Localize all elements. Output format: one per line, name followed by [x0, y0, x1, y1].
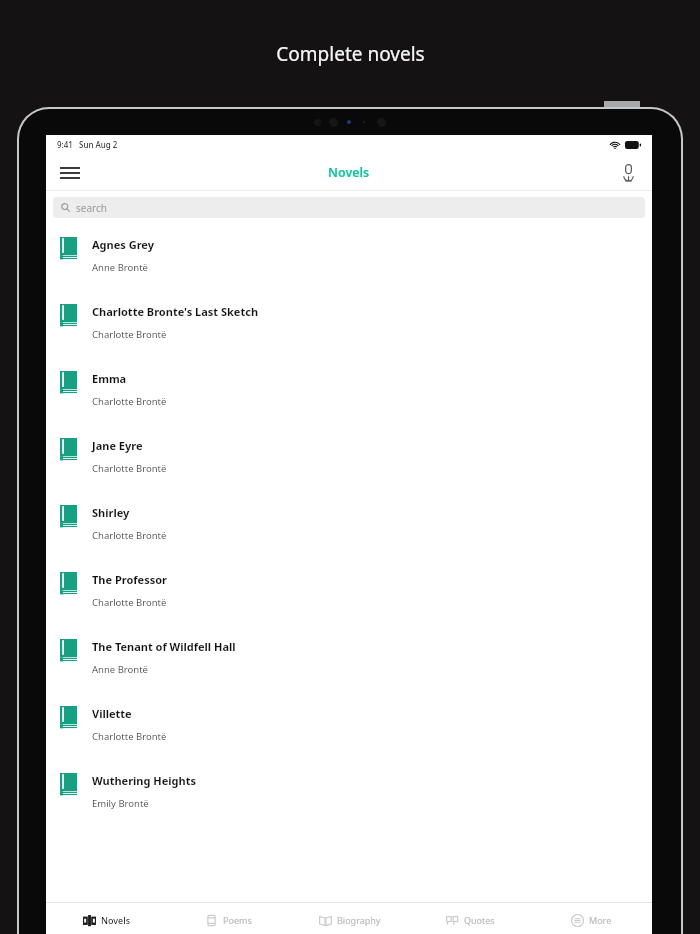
staticText: Shirley [92, 505, 130, 520]
button[interactable]: Novels [46, 903, 168, 934]
staticText: search [76, 201, 107, 215]
staticText: Novels [328, 164, 370, 181]
staticText: Anne Brontë [92, 663, 148, 676]
staticText: Charlotte Brontë [92, 596, 167, 609]
staticText: Emily Brontë [92, 797, 149, 810]
staticText: Charlotte Brontë [92, 462, 167, 475]
button[interactable]: Shirley [46, 497, 652, 564]
button[interactable]: Jane Eyre [46, 430, 652, 497]
staticText: Quotes [464, 914, 495, 926]
staticText: Charlotte Brontë [92, 328, 167, 341]
button[interactable]: Emma [46, 363, 652, 430]
staticText: The Tenant of Wildfell Hall [92, 639, 236, 654]
staticText: Villette [92, 706, 132, 721]
staticText: Wuthering Heights [92, 773, 197, 788]
button[interactable]: Biography [289, 903, 410, 934]
staticText: Biography [337, 914, 381, 926]
staticText: Charlotte Brontë [92, 529, 167, 542]
staticText: The Professor [92, 572, 167, 587]
staticText: Jane Eyre [92, 438, 143, 453]
staticText: Emma [92, 371, 127, 386]
button[interactable]: Villette [46, 698, 652, 765]
staticText: Agnes Grey [92, 237, 154, 252]
button[interactable]: Quotes [410, 903, 531, 934]
staticText: Poems [223, 914, 252, 926]
staticText: Anne Brontë [92, 261, 148, 274]
staticText: Charlotte Bronte's Last Sketch [92, 304, 259, 319]
button[interactable]: The Professor [46, 564, 652, 631]
button[interactable]: Voice search [611, 156, 645, 190]
staticText: Charlotte Brontë [92, 730, 167, 743]
staticText: Novels [101, 914, 131, 926]
button[interactable]: search [53, 197, 645, 218]
button[interactable]: Charlotte Bronte's Last Sketch [46, 296, 652, 363]
staticText: 9:41 [57, 139, 73, 150]
button[interactable]: Menu [53, 156, 87, 190]
staticText: Complete novels [276, 41, 425, 67]
staticText: More [589, 914, 612, 926]
button[interactable]: Agnes Grey [46, 229, 652, 296]
button[interactable]: Poems [168, 903, 289, 934]
staticText: Sun Aug 2 [79, 139, 118, 150]
button[interactable]: Wuthering Heights [46, 765, 652, 832]
button[interactable]: The Tenant of Wildfell Hall [46, 631, 652, 698]
button[interactable]: More [531, 903, 652, 934]
staticText: Charlotte Brontë [92, 395, 167, 408]
